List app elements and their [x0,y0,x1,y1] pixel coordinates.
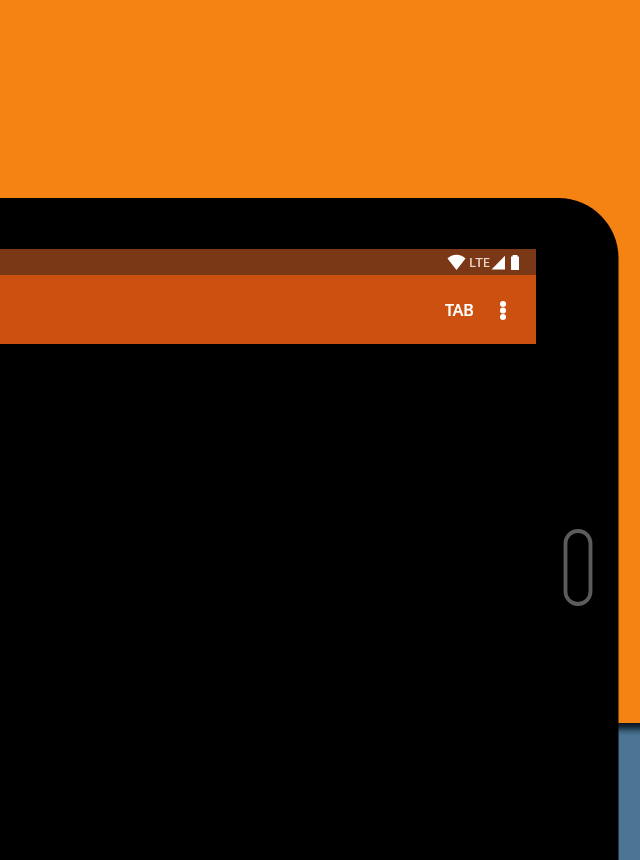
button[interactable]: TAB [435,285,484,335]
staticText: TAB [445,299,474,321]
button[interactable]: More options [491,298,515,322]
staticText: LTE [469,253,491,271]
